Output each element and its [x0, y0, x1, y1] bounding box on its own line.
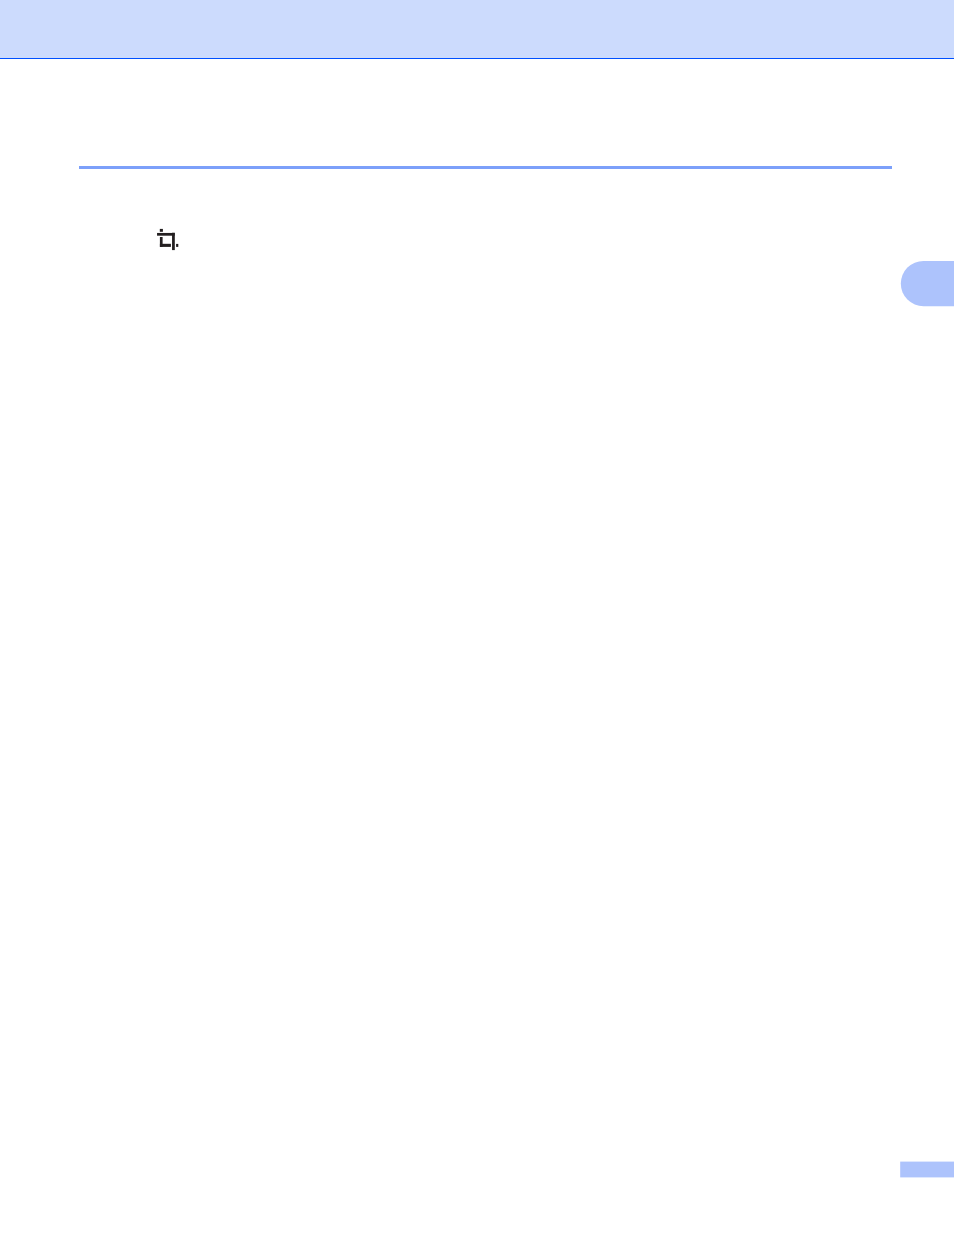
button[interactable]: Section tab: [899, 259, 954, 308]
button[interactable]: Crop: [154, 224, 186, 256]
button[interactable]: Page marker: [898, 1159, 954, 1179]
button[interactable]: Title bar: [0, 0, 954, 60]
